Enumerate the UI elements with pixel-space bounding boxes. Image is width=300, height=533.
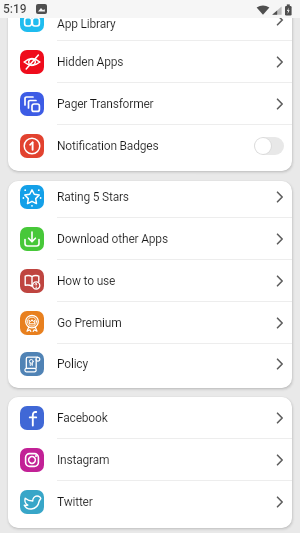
staticText: Instagram xyxy=(57,453,110,467)
button[interactable]: Download other Apps xyxy=(8,218,292,260)
staticText: Policy xyxy=(57,357,88,371)
staticText: How to use xyxy=(57,274,116,288)
staticText: Pager Transformer xyxy=(57,97,154,111)
staticText: Facebook xyxy=(57,411,108,425)
button[interactable]: Twitter xyxy=(8,481,292,523)
button[interactable]: Rating 5 Stars xyxy=(8,181,292,218)
button[interactable]: Hidden Apps xyxy=(8,41,292,83)
staticText: Hidden Apps xyxy=(57,55,124,69)
staticText: Rating 5 Stars xyxy=(57,190,129,204)
staticText: Download other Apps xyxy=(57,232,168,246)
staticText: Twitter xyxy=(57,495,93,509)
button[interactable]: Go Premium xyxy=(8,302,292,344)
staticText: Go Premium xyxy=(57,316,122,330)
button[interactable]: Notification Badges xyxy=(8,125,292,167)
button[interactable]: App Library xyxy=(8,0,292,41)
button[interactable]: Policy xyxy=(8,344,292,383)
staticText: 5:19 xyxy=(3,2,27,16)
button[interactable]: Pager Transformer xyxy=(8,83,292,125)
button[interactable]: Instagram xyxy=(8,439,292,481)
staticText: App Library xyxy=(57,17,116,31)
staticText: Notification Badges xyxy=(57,139,159,153)
button[interactable]: Facebook xyxy=(8,397,292,439)
button[interactable]: How to use xyxy=(8,260,292,302)
